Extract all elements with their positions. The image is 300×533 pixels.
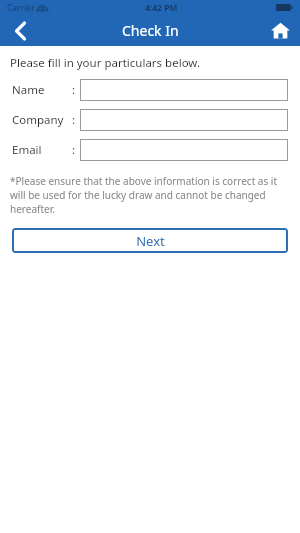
button[interactable] — [80, 109, 288, 131]
staticText: Next — [136, 232, 165, 250]
staticText: Name — [12, 82, 45, 98]
staticText: Please fill in your particulars below. — [10, 55, 201, 71]
button[interactable] — [80, 79, 288, 101]
staticText: Check In — [122, 21, 179, 40]
button[interactable] — [80, 139, 288, 161]
staticText: *Please ensure that the above informatio… — [10, 174, 286, 216]
staticText: : — [72, 82, 76, 98]
staticText: Company — [12, 112, 64, 128]
staticText: Carrier — [7, 2, 35, 14]
staticText: : — [72, 142, 76, 158]
button[interactable]: Home — [260, 15, 300, 46]
button[interactable]: Next — [12, 228, 288, 253]
staticText: : — [72, 112, 76, 128]
staticText: 4:42 PM — [145, 2, 178, 14]
button[interactable]: Back — [0, 15, 40, 46]
staticText: Email — [12, 142, 42, 158]
